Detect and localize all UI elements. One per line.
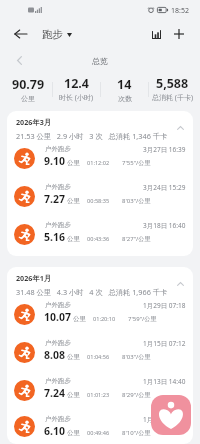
staticText: 2026年1月 [16, 273, 51, 283]
staticText: 户外跑步 [45, 339, 71, 347]
staticText: 7'59"/公里 [128, 315, 157, 323]
staticText: 10.07 [44, 310, 71, 324]
button[interactable]: 2026年1月 [7, 267, 193, 295]
staticText: 14 [117, 76, 132, 93]
button[interactable]: Health assistant [151, 395, 191, 435]
staticText: 户外跑步 [45, 415, 71, 423]
staticText: 8'03"/公里 [122, 353, 151, 361]
button[interactable]: Back [10, 24, 30, 44]
staticText: 31.48 公里 4.3 小时 4 次 总消耗 1,966 千卡 [16, 287, 168, 297]
staticText: 5,588 [156, 75, 189, 92]
staticText: 户外跑步 [45, 145, 71, 153]
staticText: 00:43:36 [87, 235, 110, 243]
button[interactable]: 户外跑步 [7, 295, 193, 333]
button[interactable]: 户外跑步 [7, 371, 193, 409]
staticText: 8'29"/公里 [122, 391, 151, 399]
button[interactable]: 户外跑步 [7, 215, 193, 253]
staticText: 01:20:10 [93, 315, 116, 323]
staticText: 户外跑步 [45, 183, 71, 191]
staticText: 3月24日 15:29 [143, 183, 186, 192]
staticText: 1月08日 07:30 [143, 415, 186, 424]
button[interactable]: Statistics [147, 25, 165, 43]
staticText: 00:58:35 [87, 197, 110, 205]
staticText: 9.10 [44, 154, 65, 168]
button[interactable]: 跑步 [42, 28, 72, 41]
button[interactable]: 户外跑步 [7, 177, 193, 215]
staticText: 6.10 [44, 424, 65, 438]
staticText: 总览 [92, 56, 108, 66]
staticText: 公里 [67, 353, 80, 361]
staticText: 7.27 [44, 192, 65, 206]
button[interactable]: Previous [13, 54, 25, 66]
staticText: 00:49:46 [87, 429, 110, 437]
button[interactable]: 户外跑步 [7, 333, 193, 371]
staticText: 跑步 [42, 28, 63, 41]
staticText: 公里 [67, 159, 80, 167]
staticText: 1月13日 14:40 [143, 377, 186, 386]
staticText: 1月29日 07:18 [143, 301, 186, 310]
staticText: 8'03"/公里 [122, 197, 151, 205]
staticText: 8'10"/公里 [122, 429, 151, 437]
staticText: 5.16 [44, 230, 65, 244]
staticText: 18:52 [171, 6, 189, 16]
staticText: 8'27"/公里 [122, 235, 151, 243]
staticText: 01:01:23 [87, 391, 110, 399]
staticText: 户外跑步 [45, 301, 71, 309]
staticText: 总消耗 (千卡) [152, 93, 194, 103]
staticText: 3月18日 16:40 [143, 221, 186, 230]
staticText: 公里 [67, 235, 80, 243]
staticText: 3月27日 16:39 [143, 145, 186, 154]
button[interactable]: Add [170, 25, 188, 43]
staticText: 公里 [67, 429, 80, 437]
staticText: 01:12:02 [87, 159, 110, 167]
staticText: 01:04:56 [87, 353, 110, 361]
staticText: 12.4 [64, 75, 89, 92]
button[interactable]: 户外跑步 [7, 409, 193, 444]
staticText: 1月15日 07:12 [143, 339, 186, 348]
staticText: 7'55"/公里 [122, 159, 151, 167]
staticText: 公里 [67, 391, 80, 399]
staticText: 户外跑步 [45, 377, 71, 385]
staticText: 户外跑步 [45, 221, 71, 229]
staticText: 时长 (小时) [59, 93, 94, 103]
staticText: 公里 [21, 94, 35, 103]
staticText: 8.08 [44, 348, 65, 362]
button[interactable]: 户外跑步 [7, 139, 193, 177]
staticText: 21.53 公里 2.9 小时 3 次 总消耗 1,346 千卡 [16, 131, 168, 141]
staticText: 7.24 [44, 386, 65, 400]
staticText: 2026年3月 [16, 117, 51, 127]
staticText: 公里 [73, 315, 86, 323]
staticText: 90.79 [12, 76, 45, 93]
staticText: 次数 [118, 94, 132, 103]
staticText: 公里 [67, 197, 80, 205]
button[interactable]: 2026年3月 [7, 111, 193, 139]
